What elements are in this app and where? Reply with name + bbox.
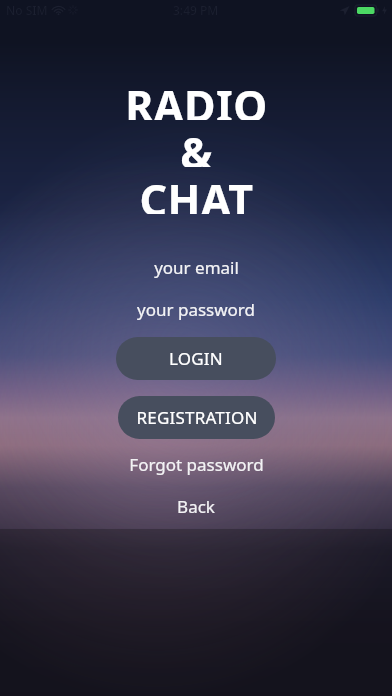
staticText: your password: [137, 298, 255, 321]
staticText: CHAT: [139, 170, 254, 214]
button[interactable]: Forgot password: [0, 449, 392, 479]
button[interactable]: REGISTRATION: [118, 396, 275, 439]
button[interactable]: LOGIN: [116, 337, 276, 380]
staticText: LOGIN: [169, 347, 223, 370]
staticText: REGISTRATION: [136, 406, 258, 429]
staticText: Forgot password: [129, 453, 264, 476]
staticText: 3:49 PM: [173, 2, 219, 18]
button[interactable]: Back: [0, 491, 392, 521]
button[interactable]: your password: [0, 294, 392, 324]
staticText: Back: [177, 495, 215, 518]
button[interactable]: your email: [0, 252, 392, 282]
staticText: RADIO: [125, 76, 268, 120]
staticText: No SIM: [6, 2, 48, 18]
staticText: &: [180, 123, 213, 167]
staticText: your email: [154, 256, 239, 279]
